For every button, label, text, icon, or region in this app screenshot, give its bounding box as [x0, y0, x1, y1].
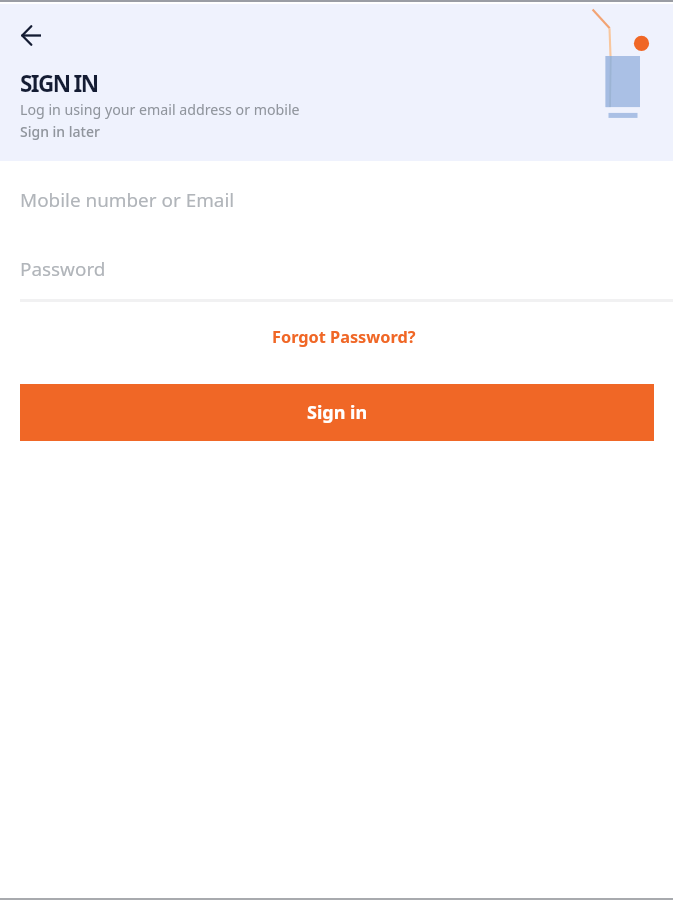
staticText: Sign in later — [20, 122, 100, 141]
button[interactable]: Sign in — [20, 384, 654, 441]
button[interactable]: Back — [8, 13, 53, 58]
staticText: Password — [20, 256, 106, 282]
staticText: Mobile number or Email — [20, 187, 235, 213]
button[interactable]: Sign in later — [14, 118, 106, 145]
staticText: Log in using your email address or mobil… — [20, 100, 300, 119]
staticText: Sign in — [307, 400, 368, 425]
button[interactable]: Forgot Password? — [266, 323, 422, 351]
staticText: SIGN IN — [20, 68, 98, 99]
button[interactable]: Mobile number or Email — [0, 161, 673, 230]
button[interactable]: Password — [0, 230, 673, 299]
staticText: Forgot Password? — [272, 326, 416, 348]
